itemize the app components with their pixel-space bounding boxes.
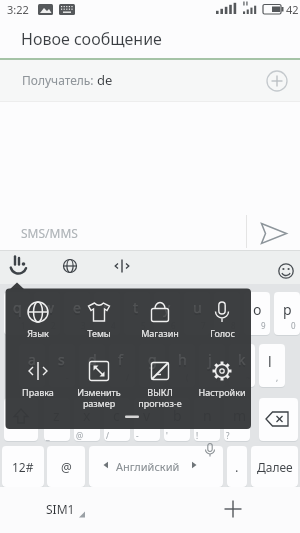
button[interactable]	[64, 292, 90, 335]
staticText: Изменить размер	[77, 386, 121, 409]
staticText: w	[43, 298, 55, 317]
button[interactable]	[89, 446, 223, 487]
staticText: 12#	[12, 459, 34, 475]
button[interactable]	[229, 344, 255, 387]
staticText: u	[193, 300, 202, 319]
staticText: g	[148, 352, 157, 371]
button[interactable]: Изменить размер	[68, 386, 130, 412]
staticText: de	[97, 71, 113, 89]
button[interactable]	[224, 398, 250, 441]
staticText: t	[133, 298, 139, 317]
staticText: c	[113, 406, 120, 425]
staticText: i	[223, 298, 227, 317]
button[interactable]	[74, 398, 100, 441]
staticText: _	[46, 430, 50, 441]
button[interactable]: ВЫКЛ прогноз-е	[129, 386, 191, 412]
staticText: i	[223, 300, 227, 319]
staticText: ВЫКЛ прогноз-е	[138, 386, 182, 409]
button[interactable]	[44, 398, 70, 441]
button[interactable]	[94, 292, 120, 335]
staticText: e	[73, 298, 81, 317]
button[interactable]	[194, 398, 220, 441]
button[interactable]	[34, 292, 60, 335]
button[interactable]	[124, 292, 150, 335]
staticText: v	[143, 406, 151, 425]
button[interactable]: Настройки	[191, 386, 253, 412]
button[interactable]	[79, 344, 105, 387]
staticText: b	[173, 406, 182, 425]
staticText: r	[103, 300, 109, 319]
staticText: t	[133, 300, 139, 319]
button[interactable]	[139, 344, 165, 387]
button[interactable]	[114, 258, 130, 274]
button[interactable]	[7, 254, 31, 280]
button[interactable]	[63, 259, 77, 273]
button[interactable]	[199, 344, 225, 387]
button[interactable]	[266, 70, 288, 92]
button[interactable]: Голос	[191, 327, 253, 353]
button[interactable]: 12#	[2, 446, 44, 487]
button[interactable]	[259, 344, 285, 387]
staticText: ,	[276, 372, 279, 383]
staticText: g	[148, 350, 157, 369]
button[interactable]	[274, 292, 300, 335]
button[interactable]: Язык	[7, 327, 69, 353]
staticText: Настройки	[198, 386, 246, 398]
staticText: k	[238, 352, 246, 371]
button[interactable]: .	[227, 446, 247, 487]
staticText: o	[253, 300, 262, 319]
button[interactable]	[0, 60, 300, 101]
staticText: p	[283, 300, 292, 319]
button[interactable]	[134, 398, 160, 441]
button[interactable]: @	[47, 446, 85, 487]
staticText: d	[88, 352, 97, 371]
staticText: Далее	[257, 459, 293, 475]
button[interactable]	[278, 263, 294, 279]
button[interactable]	[4, 292, 30, 335]
button[interactable]: Темы	[68, 327, 130, 353]
button[interactable]	[222, 498, 244, 520]
staticText: @	[61, 459, 72, 475]
staticText: s	[58, 350, 65, 369]
button[interactable]	[169, 344, 195, 387]
staticText: SMS/MMS	[21, 225, 78, 241]
button[interactable]	[259, 398, 298, 441]
button[interactable]	[154, 292, 180, 335]
button[interactable]: Магазин	[129, 327, 191, 353]
button[interactable]	[104, 398, 130, 441]
staticText: @	[76, 430, 84, 441]
staticText: Английский	[116, 459, 180, 474]
staticText: +	[36, 372, 41, 383]
staticText: 0	[291, 320, 296, 331]
staticText: f	[118, 352, 123, 371]
staticText: h	[178, 350, 187, 369]
staticText: a	[28, 352, 36, 371]
button[interactable]	[164, 398, 190, 441]
staticText: Получатель:	[22, 72, 94, 88]
button[interactable]	[259, 221, 289, 246]
button[interactable]	[30, 490, 94, 530]
staticText: Голос	[210, 327, 235, 339]
staticText: y	[163, 300, 171, 319]
staticText: !	[196, 430, 199, 441]
button[interactable]: Далее	[251, 446, 298, 487]
staticText: d	[88, 350, 97, 369]
button[interactable]	[109, 344, 135, 387]
button[interactable]	[264, 410, 292, 428]
button[interactable]	[244, 292, 270, 335]
staticText: Магазин	[141, 327, 179, 339]
button[interactable]	[214, 292, 240, 335]
staticText: 9	[261, 320, 266, 331]
button[interactable]: Правка	[7, 386, 69, 412]
button[interactable]	[19, 344, 45, 387]
staticText: *	[96, 372, 101, 383]
button[interactable]	[4, 398, 38, 441]
